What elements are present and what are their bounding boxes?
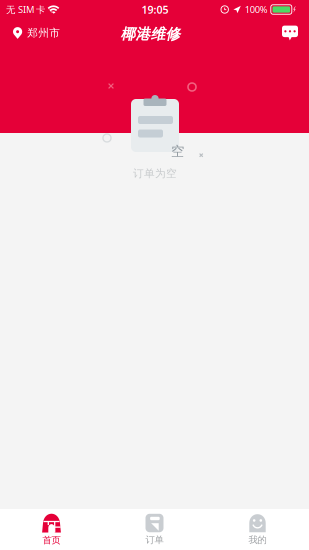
button[interactable]: 我的 — [206, 508, 309, 550]
staticText: 订单为空 — [133, 167, 177, 180]
button[interactable]: 郑州市 — [0, 19, 70, 47]
button[interactable]: 首页 — [0, 508, 103, 550]
staticText: 无 SIM 卡 — [6, 3, 45, 16]
staticText: 我的 — [248, 534, 266, 546]
staticText: 订单 — [145, 534, 163, 546]
button[interactable]: Messages — [270, 19, 309, 47]
staticText: 空 — [171, 143, 184, 159]
staticText: 郑州市 — [27, 26, 60, 39]
button[interactable]: 订单 — [103, 508, 206, 550]
staticText: 首页 — [42, 534, 60, 546]
staticText: 19:05 — [141, 2, 168, 17]
staticText: 100% — [245, 3, 268, 16]
staticText: 椰港维修 — [120, 25, 180, 43]
